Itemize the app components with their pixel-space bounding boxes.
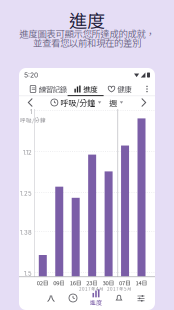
staticText: 進度 [90,298,102,307]
staticText: 並查看您以前和現在的差別 [33,36,141,49]
button[interactable]: Previous [23,96,37,108]
staticText: 1.12 [23,149,32,156]
button[interactable]: Settings [130,288,152,308]
staticText: 練習記錄 [39,84,67,94]
button[interactable]: 進度 [74,82,101,96]
staticText: 02日 [37,278,49,287]
staticText: 07日 [119,278,131,287]
staticText: 5:20 [24,71,38,79]
button[interactable]: 週 [109,97,123,108]
staticText: 16日 [70,278,82,287]
staticText: 進度 [69,7,105,33]
staticText: 09日 [53,278,65,287]
staticText: 23日 [86,278,98,287]
button[interactable]: 健康 [108,82,135,96]
button[interactable]: More options [141,82,153,96]
staticText: 1.38 [20,229,32,236]
staticText: 2017年4月 [79,285,104,292]
staticText: 呼吸/分鐘 [20,116,46,124]
staticText: 進度圖表可顯示您所達成的成就， [19,27,154,40]
staticText: 進度 [83,84,97,94]
button[interactable]: Notifications [108,288,130,308]
button[interactable]: Next [137,96,151,108]
button[interactable]: Sessions [62,288,84,308]
staticText: 14日 [135,278,147,287]
button[interactable]: Home [40,288,62,308]
staticText: 週 [109,97,117,108]
staticText: 1.5 [24,270,32,277]
staticText: 2017年5月 [107,285,132,292]
staticText: 呼吸/分鐘 [60,97,95,108]
staticText: 健康 [117,84,131,94]
staticText: 1.25 [20,190,32,197]
staticText: 30日 [103,278,115,287]
button[interactable]: 呼吸/分鐘 [51,97,101,108]
button[interactable]: 練習記錄 [29,82,68,96]
button[interactable]: 進度 [84,288,108,308]
staticText: 1 [30,108,32,116]
